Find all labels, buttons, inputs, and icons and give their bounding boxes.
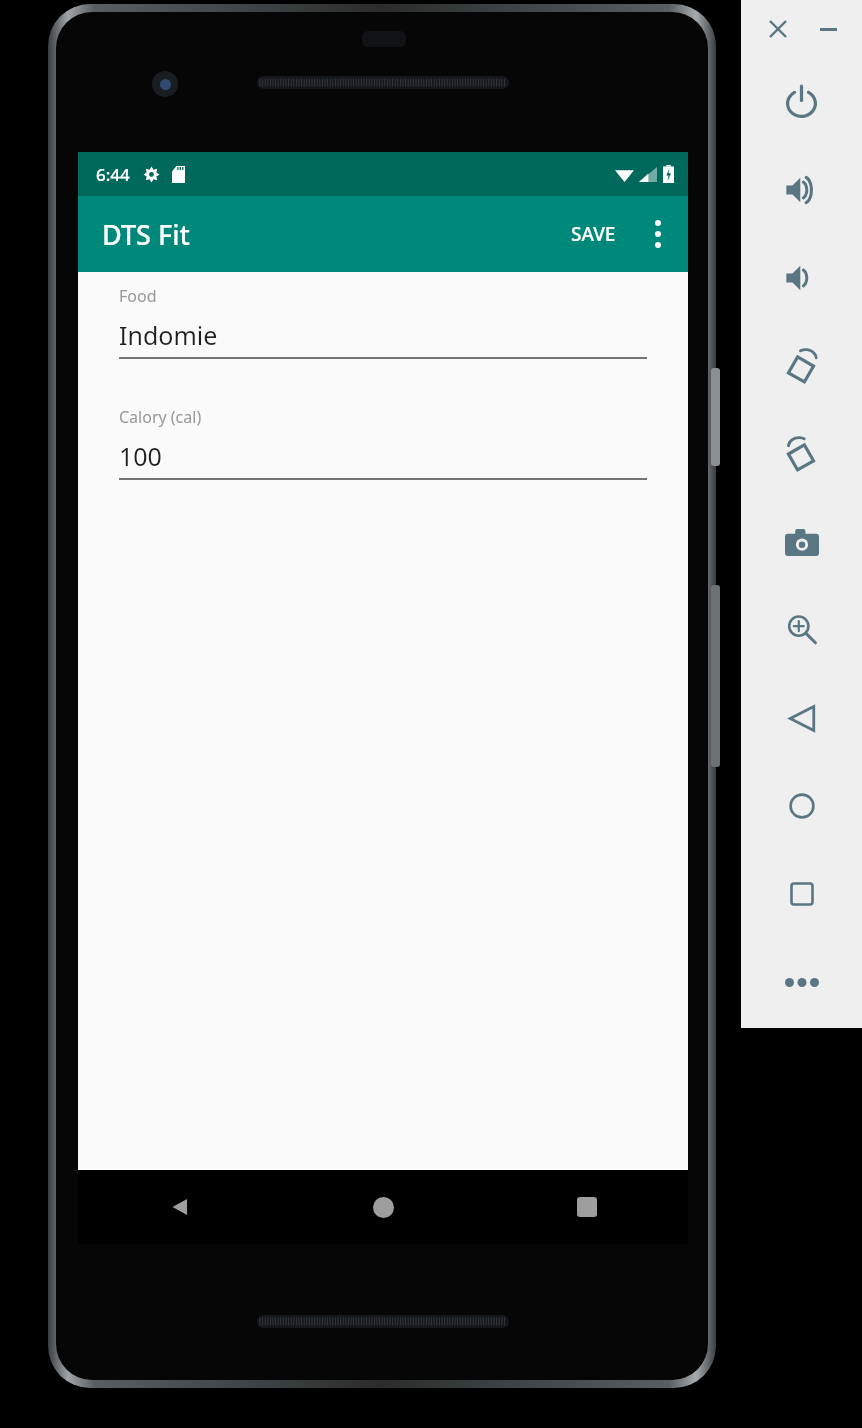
staticText: Food — [119, 285, 157, 307]
button[interactable]: Calory (cal) — [119, 406, 647, 480]
button[interactable]: Power — [741, 58, 862, 146]
button[interactable]: Back — [741, 674, 862, 762]
button[interactable]: SAVE — [557, 207, 630, 261]
staticText: Calory (cal) — [119, 406, 202, 428]
button[interactable]: More — [741, 938, 862, 1026]
button[interactable]: Back — [78, 1170, 282, 1244]
button[interactable]: Close — [761, 12, 795, 46]
staticText: 6:44 — [96, 163, 130, 186]
button[interactable]: Screenshot — [741, 498, 862, 586]
staticText: Indomie — [119, 318, 218, 352]
button[interactable]: Zoom — [741, 586, 862, 674]
staticText: 100 — [119, 439, 162, 473]
button[interactable]: Overview — [741, 850, 862, 938]
button[interactable]: Home — [741, 762, 862, 850]
button[interactable]: Volume down — [741, 234, 862, 322]
button[interactable]: Rotate right — [741, 410, 862, 498]
button[interactable]: Volume up — [741, 146, 862, 234]
staticText: SAVE — [571, 221, 616, 247]
button[interactable]: Home — [282, 1170, 485, 1244]
button[interactable]: More options — [630, 206, 686, 262]
staticText: DTS Fit — [102, 216, 190, 253]
button[interactable]: Food — [119, 285, 647, 359]
button[interactable]: Rotate left — [741, 322, 862, 410]
button[interactable]: Minimize — [811, 12, 845, 46]
button[interactable]: Recents — [485, 1170, 688, 1244]
